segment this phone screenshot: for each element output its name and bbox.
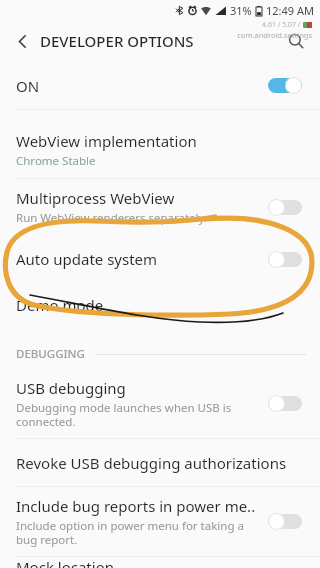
staticText: DEVELOPER OPTIONS: [40, 31, 194, 51]
staticText: WebView implementation: [16, 131, 197, 151]
button[interactable]: Search: [278, 23, 314, 59]
button[interactable]: WebView implementation: [0, 122, 320, 178]
staticText: DEBUGGING: [16, 346, 85, 362]
staticText: Include option in power menu for taking …: [16, 518, 244, 547]
staticText: Run WebView renderers separately.: [16, 210, 208, 226]
button[interactable]: Revoke USB debugging authorizations: [0, 439, 320, 486]
staticText: Chrome Stable: [16, 153, 96, 169]
staticText: Revoke USB debugging authorizations: [16, 453, 287, 473]
button[interactable]: Multiprocess WebView: [0, 179, 320, 235]
button[interactable]: Back: [4, 23, 40, 59]
button[interactable]: ON: [0, 62, 320, 109]
button[interactable]: Mock location: [0, 557, 320, 568]
staticText: USB debugging: [16, 378, 126, 398]
staticText: 12:49 AM: [266, 3, 314, 18]
staticText: Mock location: [16, 557, 114, 568]
staticText: Multiprocess WebView: [16, 188, 175, 208]
button[interactable]: Demo mode: [0, 283, 320, 327]
staticText: Include bug reports in power me..: [16, 496, 256, 516]
button[interactable]: USB debugging: [0, 369, 320, 438]
staticText: Demo mode: [16, 295, 104, 315]
staticText: Auto update system: [16, 249, 158, 269]
button[interactable]: Include bug reports in power me..: [0, 487, 320, 556]
staticText: ON: [16, 76, 40, 96]
button[interactable]: Auto update system: [0, 235, 320, 283]
staticText: 4.61 / 5.07 /: [262, 20, 303, 30]
staticText: com.android.settings: [237, 30, 312, 40]
staticText: 31%: [230, 3, 252, 18]
staticText: Debugging mode launches when USB is conn…: [16, 400, 232, 429]
